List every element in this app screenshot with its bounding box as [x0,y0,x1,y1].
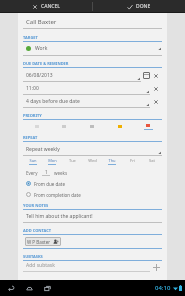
button[interactable]: W P Baxter [27,237,59,246]
button[interactable]: Priority 1 [23,120,50,132]
staticText: Call Baxter [26,18,57,26]
staticText: 4 days before due date [26,98,80,105]
staticText: Every [26,170,38,176]
button[interactable]: DONE [93,0,185,13]
staticText: Sat [149,158,155,163]
button[interactable]: 06/08/2013 [23,69,162,82]
button[interactable]: Back [4,281,18,295]
button[interactable]: Fri [122,156,142,166]
staticText: 06/08/2013 [26,72,53,79]
button[interactable]: Wed [82,156,102,166]
staticText: TARGET [23,35,38,40]
button[interactable]: From due date [23,179,162,188]
staticText: Repeat weekly [26,146,60,153]
staticText: Wed [88,158,97,163]
button[interactable]: Priority 3 [78,120,106,132]
button[interactable]: Add subtask [23,261,162,273]
button[interactable]: Pick date [143,72,150,79]
button[interactable]: Priority 4 [106,120,134,132]
button[interactable]: Thu [102,156,122,166]
staticText: CANCEL [41,3,60,10]
button[interactable]: Repeat weekly [23,143,162,156]
button[interactable]: Priority 2 [50,120,78,132]
button[interactable]: Home [22,281,36,295]
button[interactable]: From completion date [23,190,162,199]
staticText: 04:10 [155,284,171,292]
button[interactable]: Tue [62,156,82,166]
button[interactable]: Sat [142,156,162,166]
button[interactable]: 4 days before due date [23,95,162,108]
staticText: REPEAT [23,135,38,140]
button[interactable]: Sun [23,156,42,166]
staticText: DONE [136,3,151,10]
staticText: Mon [48,158,57,163]
staticText: Tell him about the applicant! [26,213,93,220]
staticText: Thu [108,158,116,163]
button[interactable]: Work [23,42,162,55]
staticText: Sun [29,158,37,163]
staticText: Add subtask [26,262,55,269]
staticText: 1 [45,169,48,175]
staticText: From completion date [34,192,81,198]
button[interactable]: Tell him about the applicant! [23,210,162,222]
staticText: weeks [54,170,68,176]
staticText: Work [35,45,48,52]
button[interactable]: 11:00 [23,82,162,95]
button[interactable]: CANCEL [0,0,92,13]
staticText: Tue [69,158,76,163]
staticText: W P Baxter [27,239,51,245]
staticText: SUBTASKS [23,254,43,259]
button[interactable]: Recents [40,281,54,295]
staticText: 11:00 [26,85,39,92]
staticText: PRIORITY [23,113,42,118]
button[interactable]: Clear [150,69,162,82]
button[interactable]: Mon [42,156,62,166]
staticText: DUE DATE & REMINDER [23,61,69,66]
staticText: From due date [34,181,65,187]
staticText: ADD CONTACT [23,228,52,233]
button[interactable]: Clear [150,82,162,95]
button[interactable]: Add subtask [150,261,162,273]
staticText: YOUR NOTES [23,203,49,208]
staticText: Fri [130,158,135,163]
button[interactable]: Clear [150,95,162,108]
button[interactable]: Priority 5 [134,120,162,132]
